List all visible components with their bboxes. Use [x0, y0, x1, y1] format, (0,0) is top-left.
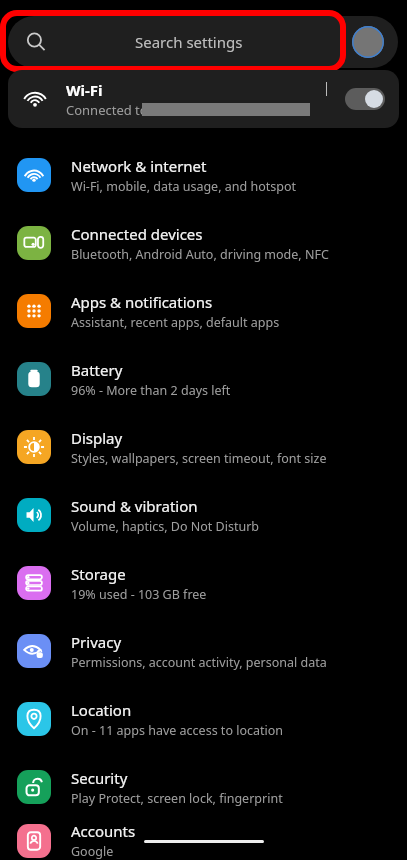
- staticText: Search settings: [135, 32, 243, 52]
- staticText: Permissions, account activity, personal …: [71, 654, 327, 671]
- staticText: Styles, wallpapers, screen timeout, font…: [71, 450, 327, 467]
- staticText: Connected to: [66, 101, 155, 119]
- button[interactable]: Security: [0, 753, 407, 821]
- staticText: Security: [71, 768, 128, 788]
- staticText: Wi-Fi, mobile, data usage, and hotspot: [71, 178, 296, 195]
- staticText: Wi-Fi: [66, 80, 103, 100]
- button[interactable]: Sound & vibration: [0, 481, 407, 549]
- button[interactable]: Storage: [0, 549, 407, 617]
- button[interactable]: Search settings: [8, 16, 345, 68]
- button[interactable]: Display: [0, 413, 407, 481]
- staticText: Privacy: [71, 632, 122, 652]
- staticText: Bluetooth, Android Auto, driving mode, N…: [71, 246, 329, 263]
- staticText: Display: [71, 428, 123, 448]
- button[interactable]: Wi-Fi: [8, 70, 399, 128]
- staticText: Volume, haptics, Do Not Disturb: [71, 518, 260, 535]
- staticText: Location: [71, 700, 132, 720]
- button[interactable]: Apps & notifications: [0, 277, 407, 345]
- button[interactable]: Wi-Fi toggle: [345, 88, 385, 110]
- staticText: 96% - More than 2 days left: [71, 382, 231, 399]
- button[interactable]: Network & internet: [0, 141, 407, 209]
- button[interactable]: Account: [352, 26, 384, 58]
- staticText: Accounts: [71, 821, 136, 841]
- staticText: Google: [71, 843, 114, 860]
- staticText: Storage: [71, 564, 126, 584]
- button[interactable]: Battery: [0, 345, 407, 413]
- button[interactable]: Privacy: [0, 617, 407, 685]
- staticText: On - 11 apps have access to location: [71, 722, 284, 739]
- staticText: Apps & notifications: [71, 292, 213, 312]
- staticText: Battery: [71, 360, 123, 380]
- staticText: Network & internet: [71, 156, 207, 176]
- button[interactable]: Accounts: [0, 821, 407, 860]
- staticText: Connected devices: [71, 224, 203, 244]
- staticText: Sound & vibration: [71, 496, 198, 516]
- staticText: 19% used - 103 GB free: [71, 586, 207, 603]
- button[interactable]: Location: [0, 685, 407, 753]
- staticText: Play Protect, screen lock, fingerprint: [71, 790, 283, 807]
- staticText: Assistant, recent apps, default apps: [71, 314, 280, 331]
- button[interactable]: Connected devices: [0, 209, 407, 277]
